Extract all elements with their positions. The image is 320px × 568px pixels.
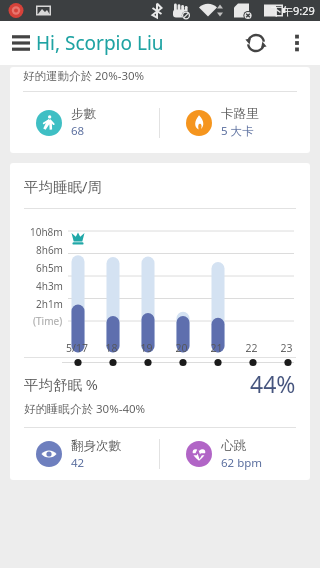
staticText: Hi, Scorpio Liu [36,30,164,56]
staticText: 20 [175,341,188,355]
staticText: 42 [71,455,85,471]
button[interactable]: 心跳 [160,428,310,480]
button[interactable]: 好的運動介於 20%-30% [10,67,310,153]
staticText: (Time) [33,314,63,328]
staticText: 22 [245,341,258,355]
staticText: 62 bpm [221,455,263,471]
staticText: 44% [250,368,296,399]
staticText: 18 [105,341,118,355]
staticText: 卡路里 [221,106,259,122]
staticText: 19 [140,341,153,355]
staticText: 68 [71,123,85,139]
button[interactable]: 翻身次數 [10,428,159,480]
staticText: 21 [210,341,223,355]
staticText: 6h5m [36,261,63,275]
staticText: 好的睡眠介於 30%-40% [24,401,146,417]
button[interactable]: 卡路里 [160,92,310,153]
button[interactable]: 步數 [10,92,159,153]
button[interactable]: Menu [4,26,38,60]
staticText: 4h3m [36,279,63,293]
staticText: 翻身次數 [71,438,121,454]
staticText: 好的運動介於 20%-30% [23,68,145,84]
staticText: 5/17 [66,341,88,355]
staticText: 平均睡眠/周 [24,176,102,196]
staticText: 23 [280,341,293,355]
staticText: 2h1m [36,297,63,311]
button[interactable]: Refresh [238,25,274,61]
staticText: 心跳 [221,438,246,454]
staticText: 10h8m [30,225,63,239]
button[interactable]: More options [280,26,314,60]
staticText: 步數 [71,106,96,122]
staticText: 8h6m [36,243,63,257]
staticText: 5 大卡 [221,123,254,139]
staticText: 下午9:29 [271,3,315,18]
staticText: 平均舒眠 % [24,374,98,394]
